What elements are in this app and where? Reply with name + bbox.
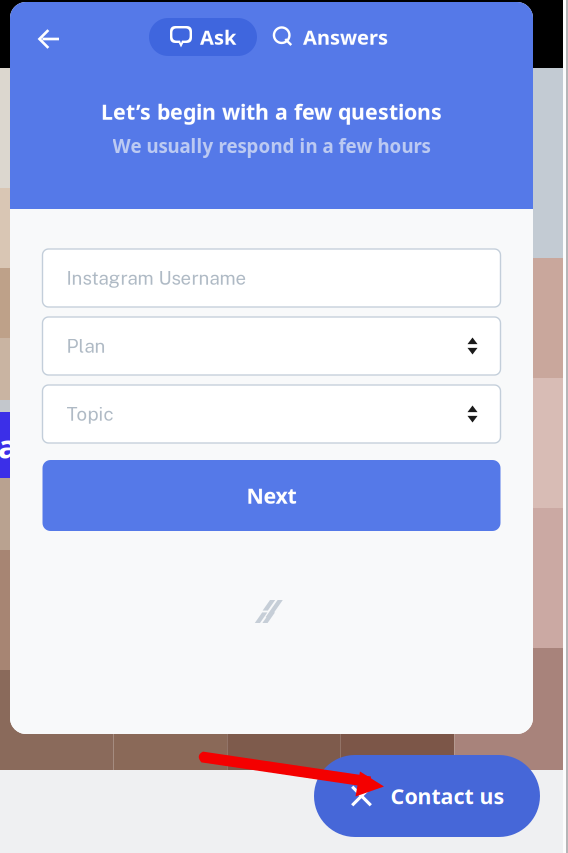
staticText: Contact us (390, 781, 504, 811)
staticText: Let’s begin with a few questions (101, 97, 442, 126)
staticText: We usually respond in a few hours (112, 133, 430, 158)
button[interactable]: Next (42, 460, 500, 531)
staticText: Next (246, 481, 296, 510)
button[interactable]: Answers (273, 18, 388, 56)
staticText: Ask (200, 23, 236, 51)
button[interactable]: Instagram Username (42, 249, 500, 307)
staticText: Instagram Username (66, 267, 246, 289)
button[interactable]: Plan (42, 317, 500, 375)
button[interactable]: Ask (149, 18, 257, 56)
staticText: Topic (66, 403, 113, 425)
button[interactable]: Contact us (314, 755, 540, 837)
button[interactable]: Topic (42, 385, 500, 443)
staticText: Plan (66, 335, 105, 357)
staticText: Answers (303, 23, 388, 51)
button[interactable]: Back (27, 17, 71, 61)
staticText: a (0, 424, 17, 468)
